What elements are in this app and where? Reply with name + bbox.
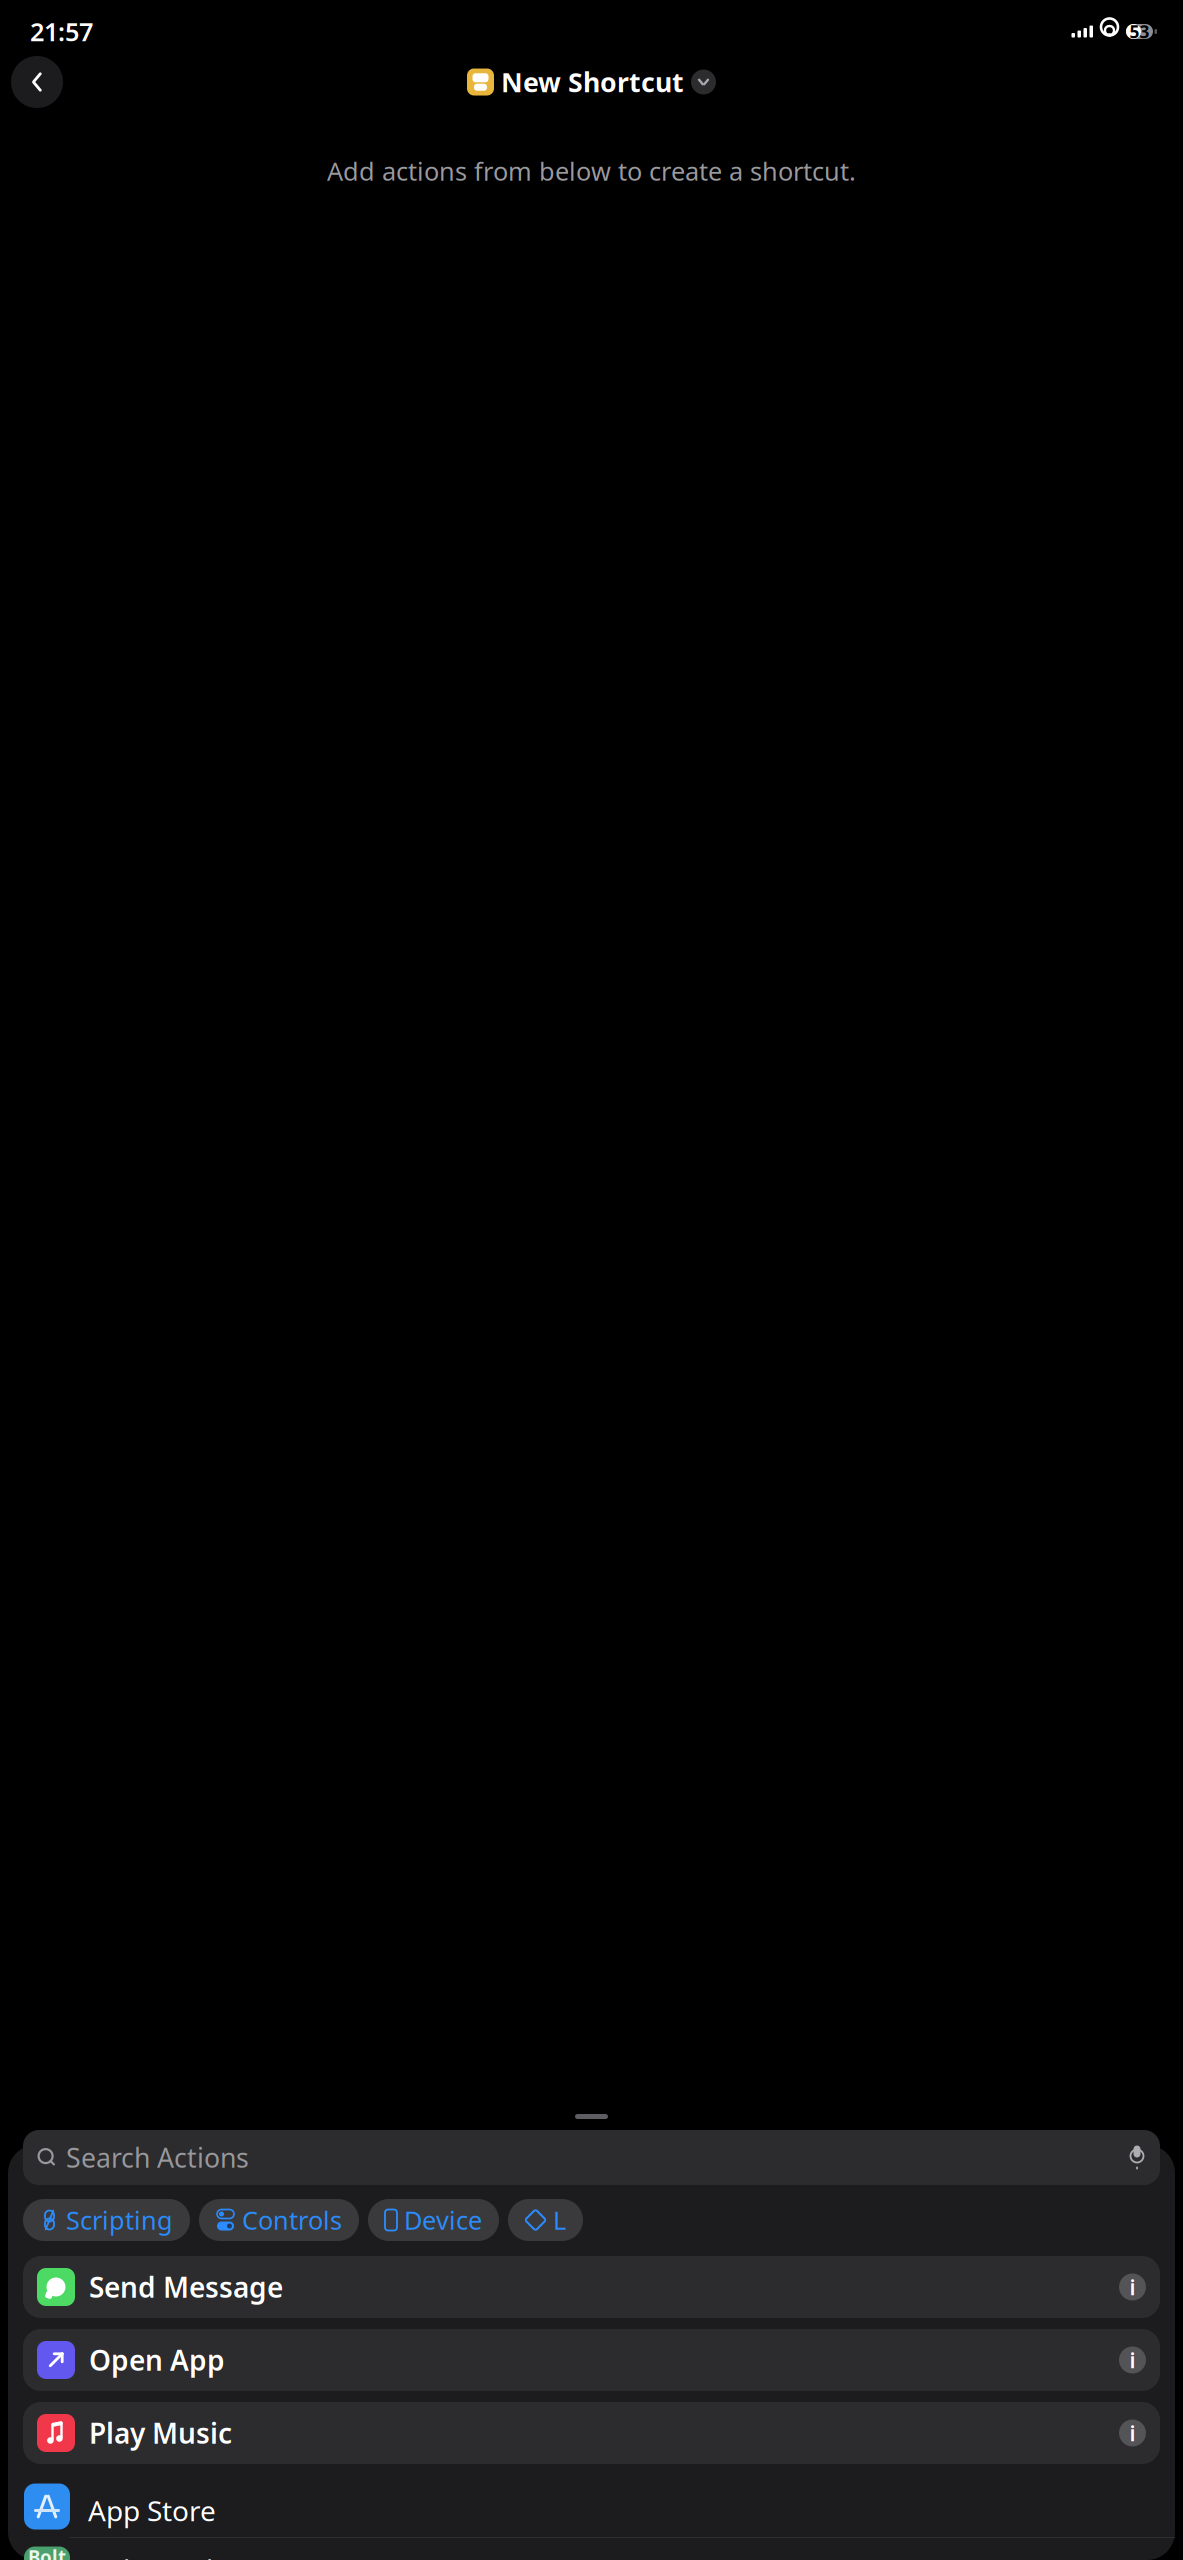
staticText: App Store (88, 2492, 216, 2529)
staticText: Bolt Food (88, 2551, 213, 2560)
button[interactable]: Bolt (8, 2538, 1175, 2560)
staticText: Bolt (28, 2545, 66, 2560)
button[interactable]: Scripting (23, 2199, 190, 2241)
staticText: i (1129, 2346, 1135, 2374)
staticText: i (1129, 2419, 1135, 2447)
button[interactable]: Open App (23, 2329, 1160, 2391)
button[interactable]: Play Music (23, 2402, 1160, 2464)
staticText: 53 (1129, 20, 1149, 43)
button[interactable]: Search Actions (23, 2130, 1160, 2185)
staticText: Send Message (89, 2268, 283, 2306)
button[interactable]: Send Message (23, 2256, 1160, 2318)
staticText: Device (404, 2203, 482, 2237)
staticText: i (1129, 2273, 1135, 2301)
button[interactable]: Shortcut options (691, 69, 716, 94)
staticText: Play Music (89, 2414, 232, 2452)
staticText: Search Actions (66, 2140, 249, 2175)
staticText: Open App (89, 2341, 225, 2379)
button[interactable]: L (508, 2199, 583, 2241)
staticText: Add actions from below to create a short… (327, 154, 856, 188)
staticText: Controls (242, 2203, 342, 2237)
staticText: L (553, 2203, 566, 2237)
button[interactable]: Controls (199, 2199, 359, 2241)
button[interactable]: App Store (8, 2475, 1175, 2538)
staticText: Scripting (66, 2203, 173, 2237)
button[interactable]: Back (11, 56, 63, 108)
staticText: 21:57 (30, 15, 93, 48)
button[interactable]: Device (368, 2199, 499, 2241)
staticText: New Shortcut (501, 64, 684, 100)
